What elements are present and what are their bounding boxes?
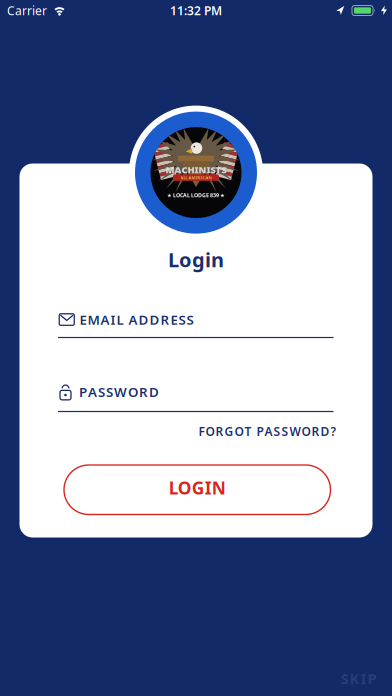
- staticText: 11:32 PM: [170, 2, 222, 18]
- staticText: P A S S W O R D: [79, 383, 159, 401]
- staticText: E M A I L A D D R E S S: [79, 311, 193, 328]
- staticText: ALL AMERICAN: [180, 175, 211, 180]
- button[interactable]: S K I P: [340, 669, 376, 688]
- staticText: LOGIN: [169, 476, 226, 499]
- button[interactable]: LOGIN: [64, 465, 330, 514]
- staticText: Login: [168, 246, 224, 273]
- button[interactable]: F O R G O T P A S S W O R D ?: [198, 423, 336, 439]
- staticText: MACHINISTS: [165, 163, 226, 176]
- staticText: Carrier: [7, 2, 47, 18]
- staticText: S K I P: [340, 669, 376, 688]
- staticText: ★ LOCAL LODGE 839 ★: [167, 192, 225, 199]
- staticText: F O R G O T P A S S W O R D ?: [198, 423, 336, 439]
